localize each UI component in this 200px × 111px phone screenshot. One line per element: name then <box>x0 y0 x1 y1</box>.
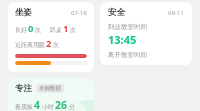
staticText: 小时 <box>42 103 54 111</box>
staticText: 趴桌 <box>50 26 62 34</box>
staticText: 09-11 <box>168 9 184 17</box>
staticText: 分 <box>69 103 75 111</box>
staticText: 0 <box>28 22 34 35</box>
staticText: 离开教室时间 <box>108 51 147 59</box>
staticText: 次 <box>70 26 76 34</box>
staticText: 看黑板 <box>15 103 33 111</box>
staticText: 13:45 <box>108 32 137 47</box>
staticText: 安全 <box>108 7 125 18</box>
staticText: 07-19 <box>71 9 87 17</box>
staticText: 示例数据 <box>39 85 61 92</box>
staticText: 良好 <box>15 26 27 34</box>
button[interactable]: 专注 <box>8 78 94 111</box>
staticText: 26 <box>55 98 68 111</box>
button[interactable]: 安全 <box>100 2 192 65</box>
staticText: 2 <box>46 37 52 50</box>
staticText: 次 <box>35 26 41 34</box>
staticText: 近距离用眼 <box>15 41 45 49</box>
staticText: 坐姿 <box>15 7 32 18</box>
staticText: 次 <box>53 41 59 49</box>
staticText: 1 <box>63 22 69 35</box>
staticText: 到达教室时间 <box>108 23 147 31</box>
staticText: 专注 <box>15 83 32 94</box>
button[interactable]: 坐姿 <box>8 2 94 72</box>
staticText: 4 <box>34 98 41 111</box>
